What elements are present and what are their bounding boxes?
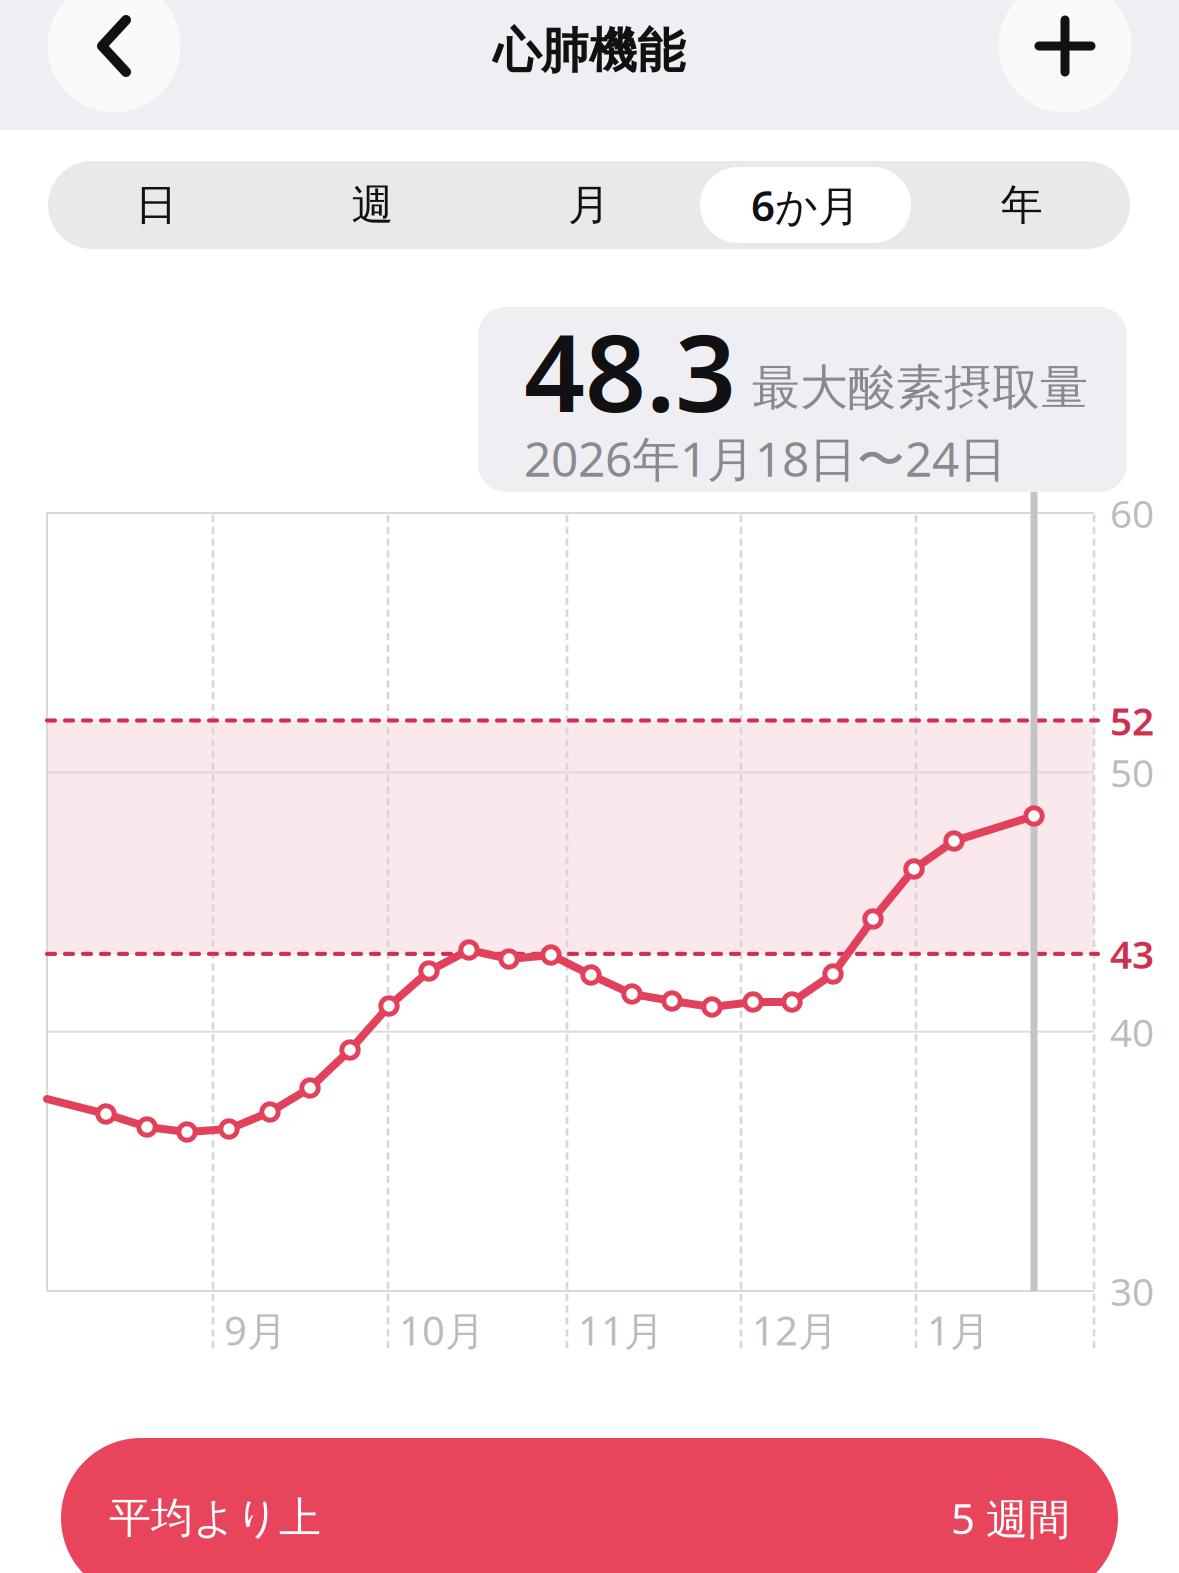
button[interactable]: 週 [264, 161, 481, 249]
staticText: 50 [1110, 751, 1154, 793]
staticText: 1月 [927, 1308, 990, 1352]
staticText: 日 [135, 184, 177, 226]
button[interactable]: 月 [481, 161, 697, 249]
staticText: 月 [568, 184, 610, 226]
button[interactable]: 日 [48, 161, 264, 249]
staticText: 11月 [578, 1308, 664, 1352]
staticText: 9月 [224, 1308, 287, 1352]
staticText: 30 [1110, 1270, 1154, 1312]
staticText: 心肺機能 [493, 27, 685, 75]
button[interactable]: 追加 [998, 0, 1131, 112]
button[interactable]: 戻る [47, 0, 180, 112]
staticText: 12月 [752, 1308, 838, 1352]
staticText: 年 [1001, 184, 1043, 226]
staticText: 2026年1月18日〜24日 [524, 438, 1007, 479]
staticText: 5 週間 [951, 1495, 1070, 1541]
staticText: 週 [352, 184, 394, 226]
staticText: 52 [1110, 699, 1154, 741]
staticText: 60 [1110, 492, 1154, 534]
staticText: 6か月 [751, 182, 860, 228]
staticText: 平均より上 [109, 1497, 321, 1539]
staticText: 43 [1110, 933, 1154, 975]
button[interactable]: 年 [914, 161, 1130, 249]
staticText: 40 [1110, 1011, 1154, 1053]
staticText: 10月 [399, 1308, 485, 1352]
button[interactable]: 6か月 [697, 161, 914, 249]
button[interactable]: 平均より上 [61, 1438, 1118, 1573]
staticText: 48.3 [524, 327, 736, 414]
staticText: 最大酸素摂取量 [752, 369, 1088, 406]
